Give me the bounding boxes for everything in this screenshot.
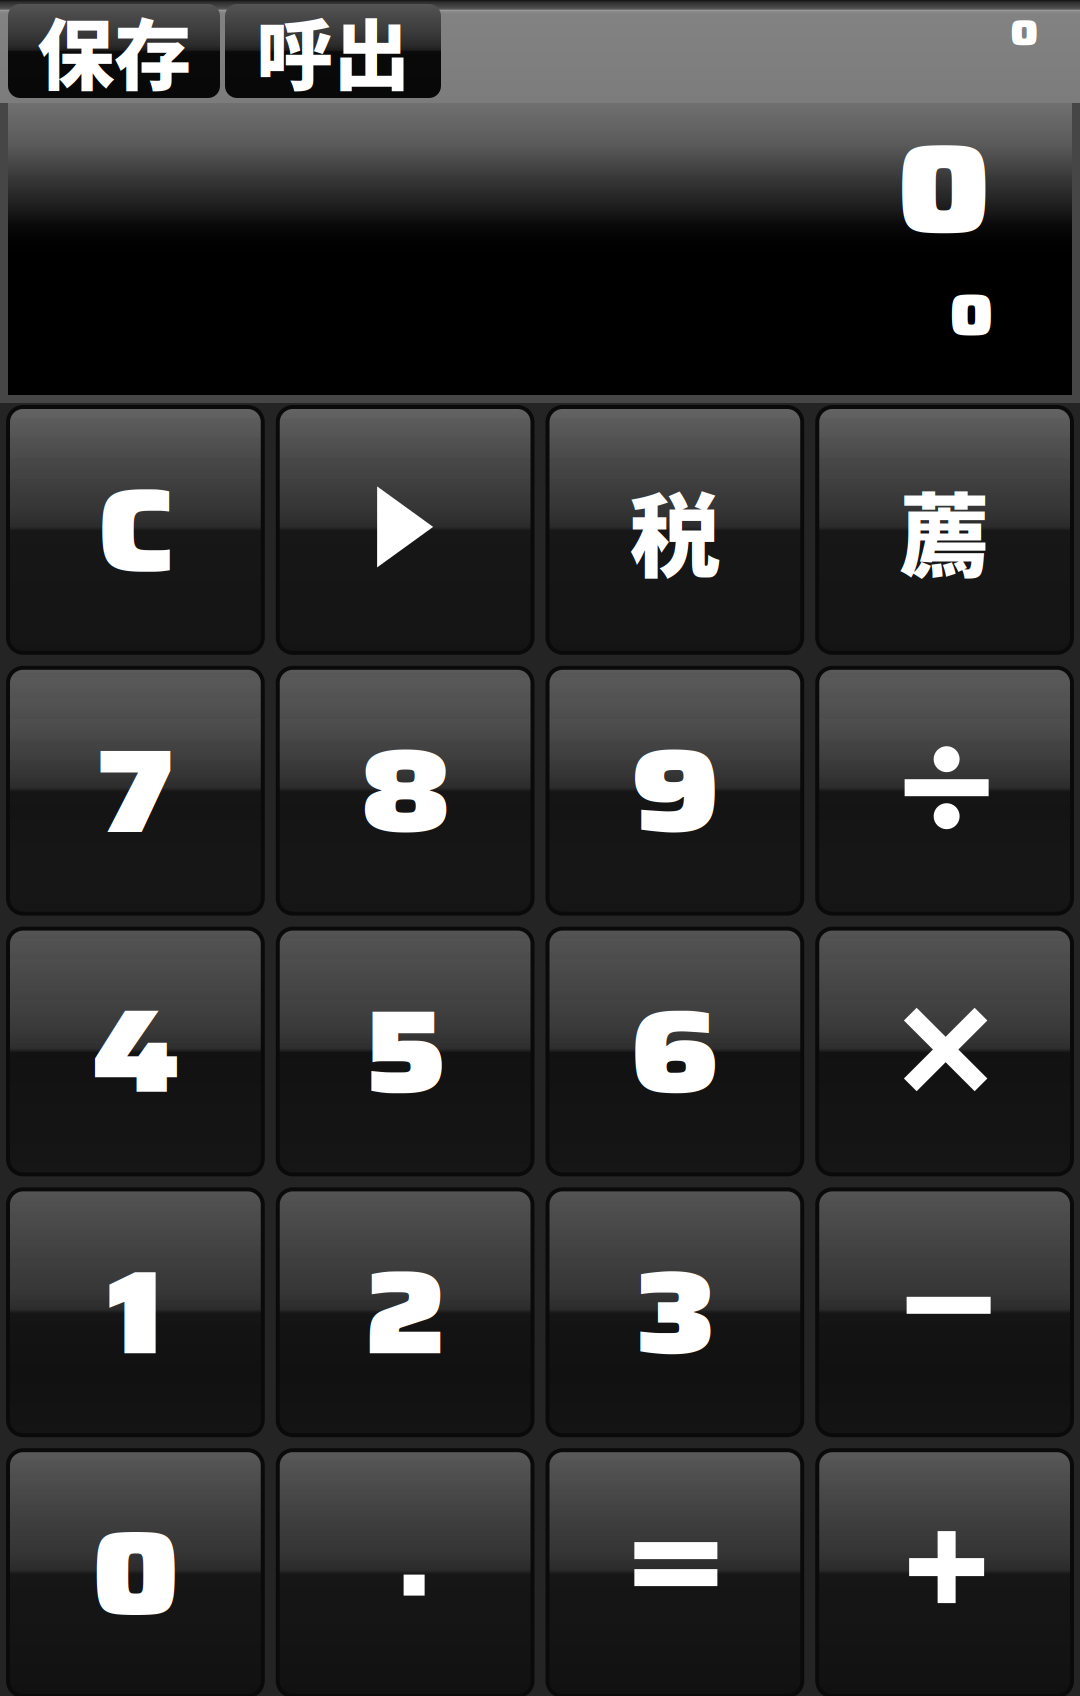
button[interactable]: 1 — [8, 1189, 263, 1435]
button[interactable]: 保存 — [8, 4, 220, 98]
button[interactable]: Equals — [547, 1450, 802, 1696]
button[interactable]: C — [8, 407, 263, 653]
staticText: 8 — [359, 698, 451, 883]
button[interactable]: 薦 — [817, 407, 1072, 653]
staticText: 9 — [629, 698, 720, 883]
staticText: 薦 — [899, 464, 990, 596]
button[interactable]: 7 — [8, 668, 263, 914]
button[interactable]: 0 — [8, 1450, 263, 1696]
staticText: 1 — [109, 1220, 162, 1405]
staticText: 税 — [629, 464, 720, 596]
staticText: 6 — [629, 959, 720, 1144]
button[interactable]: Minus — [817, 1189, 1072, 1435]
button[interactable]: 税 — [547, 407, 802, 653]
button[interactable]: 3 — [547, 1189, 802, 1435]
staticText: C — [96, 438, 174, 622]
button[interactable]: Next — [278, 407, 533, 653]
staticText: 保存 — [37, 0, 191, 106]
staticText: 4 — [91, 959, 180, 1144]
staticText: 0 — [896, 90, 992, 287]
staticText: 5 — [363, 959, 448, 1144]
staticText: 7 — [96, 698, 174, 883]
button[interactable]: 呼出 — [225, 4, 441, 98]
button[interactable]: 8 — [278, 668, 533, 914]
button[interactable]: 9 — [547, 668, 802, 914]
button[interactable]: 6 — [547, 929, 802, 1174]
staticText: 呼出 — [256, 0, 410, 106]
button[interactable]: Plus — [817, 1450, 1072, 1696]
staticText: 0 — [1010, 3, 1038, 62]
staticText: 3 — [633, 1220, 716, 1405]
button[interactable]: Multiply — [817, 929, 1072, 1174]
button[interactable]: Divide — [817, 668, 1072, 914]
button[interactable]: Decimal point — [278, 1450, 533, 1696]
button[interactable]: 2 — [278, 1189, 533, 1435]
staticText: 0 — [949, 269, 994, 361]
button[interactable]: 4 — [8, 929, 263, 1174]
staticText: 2 — [364, 1220, 447, 1405]
staticText: 0 — [91, 1481, 180, 1665]
button[interactable]: 5 — [278, 929, 533, 1174]
